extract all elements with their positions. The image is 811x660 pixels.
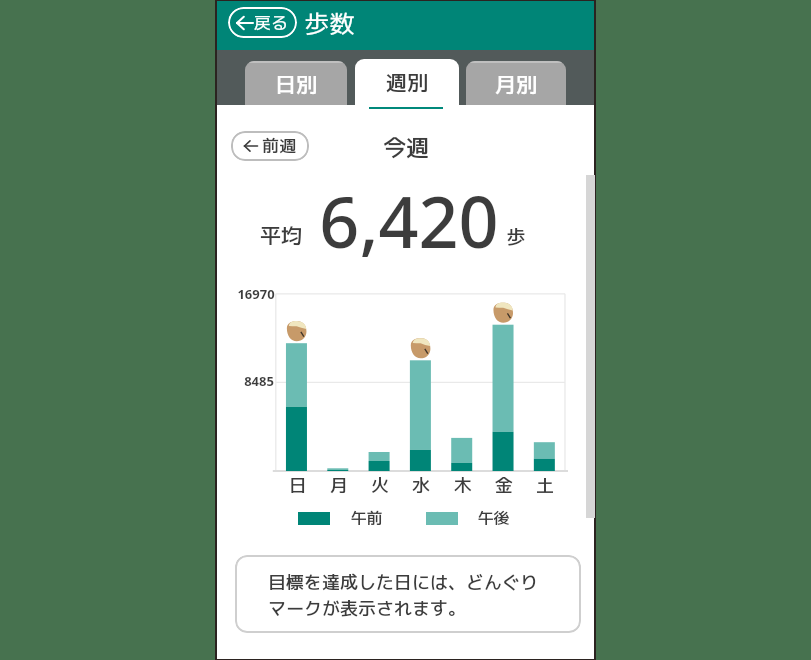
staticText: 金 bbox=[495, 473, 513, 498]
staticText: 土 bbox=[536, 473, 554, 498]
staticText: マークが表示されます。 bbox=[268, 596, 466, 621]
staticText: 月別 bbox=[495, 69, 537, 98]
staticText: 午前 bbox=[350, 507, 383, 529]
button[interactable]: 週別 bbox=[355, 59, 459, 106]
staticText: 今週 bbox=[383, 131, 429, 163]
staticText: 週別 bbox=[386, 67, 428, 96]
staticText: 水 bbox=[412, 473, 430, 498]
staticText: 16970 bbox=[237, 285, 275, 303]
button[interactable]: Back bbox=[228, 7, 297, 38]
staticText: 午後 bbox=[477, 507, 510, 529]
staticText: 6,420 bbox=[319, 173, 499, 268]
button[interactable]: 目標を達成した日には、どんぐり bbox=[235, 555, 581, 633]
staticText: 歩 bbox=[506, 224, 526, 251]
button[interactable]: 前週 bbox=[231, 131, 309, 161]
button[interactable]: 月別 bbox=[466, 61, 566, 105]
staticText: 日 bbox=[289, 473, 307, 498]
staticText: 前週 bbox=[262, 134, 296, 158]
staticText: 戻る bbox=[254, 11, 288, 35]
staticText: 8485 bbox=[244, 372, 274, 390]
staticText: 火 bbox=[371, 473, 389, 498]
button[interactable]: 日別 bbox=[245, 61, 347, 105]
staticText: 目標を達成した日には、どんぐり bbox=[268, 570, 538, 595]
staticText: 木 bbox=[454, 473, 472, 498]
staticText: 日別 bbox=[275, 69, 317, 98]
staticText: 月 bbox=[330, 473, 348, 498]
staticText: 平均 bbox=[260, 220, 302, 249]
staticText: 歩数 bbox=[304, 6, 355, 41]
